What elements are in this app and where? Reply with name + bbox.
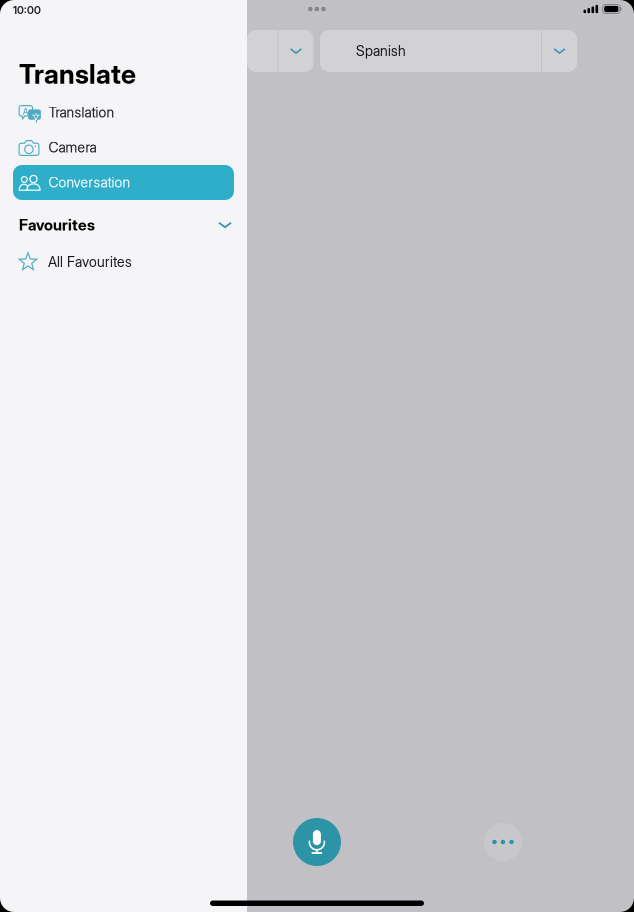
button[interactable]: Favourites xyxy=(0,212,247,238)
button[interactable]: A xyxy=(13,95,234,130)
button[interactable]: Conversation xyxy=(13,165,234,200)
staticText: Conversation xyxy=(48,174,130,191)
staticText: Spanish xyxy=(356,42,406,59)
staticText: All Favourites xyxy=(48,253,132,270)
staticText: A xyxy=(23,107,29,117)
staticText: Translate xyxy=(19,58,136,90)
button[interactable]: Record xyxy=(293,818,341,866)
staticText: 文 xyxy=(31,111,40,123)
staticText: Favourites xyxy=(19,216,95,234)
staticText: Translation xyxy=(48,104,114,121)
staticText: 10:00 xyxy=(13,3,41,16)
button[interactable]: Spanish xyxy=(320,30,577,72)
button[interactable]: More xyxy=(484,823,522,861)
button[interactable]: Camera xyxy=(13,130,234,165)
staticText: Camera xyxy=(48,139,96,156)
button[interactable]: All Favourites xyxy=(0,248,247,276)
button[interactable]: Source language xyxy=(247,30,313,72)
